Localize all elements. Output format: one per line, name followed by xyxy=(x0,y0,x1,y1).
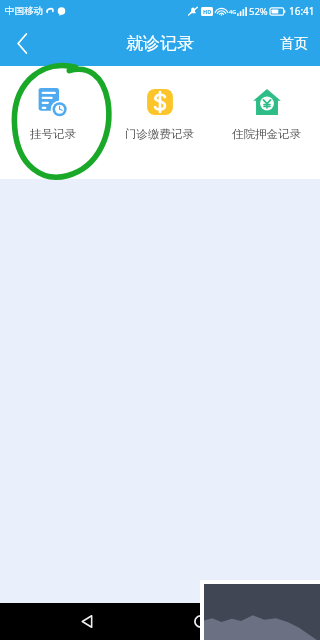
staticText: 16:41 xyxy=(289,4,315,18)
button[interactable]: 门诊缴费记录 xyxy=(106,85,213,143)
staticText: 中国移动 xyxy=(5,5,43,17)
button[interactable]: 返回 xyxy=(0,21,45,66)
staticText: 门诊缴费记录 xyxy=(125,127,194,141)
staticText: 就诊记录 xyxy=(126,33,194,54)
button[interactable]: Home xyxy=(180,603,220,640)
staticText: 住院押金记录 xyxy=(232,127,301,141)
button[interactable]: Back xyxy=(67,603,107,640)
button[interactable]: 首页 xyxy=(268,21,320,66)
staticText: 4G xyxy=(229,8,237,15)
staticText: 挂号记录 xyxy=(30,127,76,141)
staticText: 首页 xyxy=(280,35,308,53)
staticText: HD xyxy=(203,8,212,15)
staticText: 52% xyxy=(249,5,268,18)
button[interactable]: 挂号记录 xyxy=(0,85,106,143)
button[interactable]: 住院押金记录 xyxy=(213,85,320,143)
